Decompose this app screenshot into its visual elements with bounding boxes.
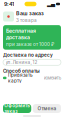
button[interactable]: Бесплатная доставка xyxy=(3,25,61,50)
staticText: ▂▄ xyxy=(47,1,55,7)
staticText: 3 товара xyxy=(16,17,37,23)
button[interactable]: ул. Ленина, 12 xyxy=(3,59,61,65)
staticText: Привязать карту xyxy=(8,72,33,84)
staticText: ул. Ленина, 12 xyxy=(5,59,37,65)
button[interactable]: Оформить заказ xyxy=(3,104,31,113)
staticText: Бесплатная доставка xyxy=(6,28,36,40)
staticText: Ваш заказ xyxy=(16,10,44,16)
staticText: Способ оплаты xyxy=(3,68,40,74)
staticText: 9:41 xyxy=(4,1,14,7)
staticText: Доставка по адресу xyxy=(3,52,53,58)
button[interactable]: Отмена xyxy=(33,104,61,113)
staticText: при заказе от 1000 ₽ xyxy=(6,41,54,47)
staticText: Оформить заказ xyxy=(4,103,30,114)
staticText: изменить xyxy=(44,75,61,80)
staticText: Отмена xyxy=(37,106,56,111)
button[interactable]: Привязать карту xyxy=(0,75,64,81)
